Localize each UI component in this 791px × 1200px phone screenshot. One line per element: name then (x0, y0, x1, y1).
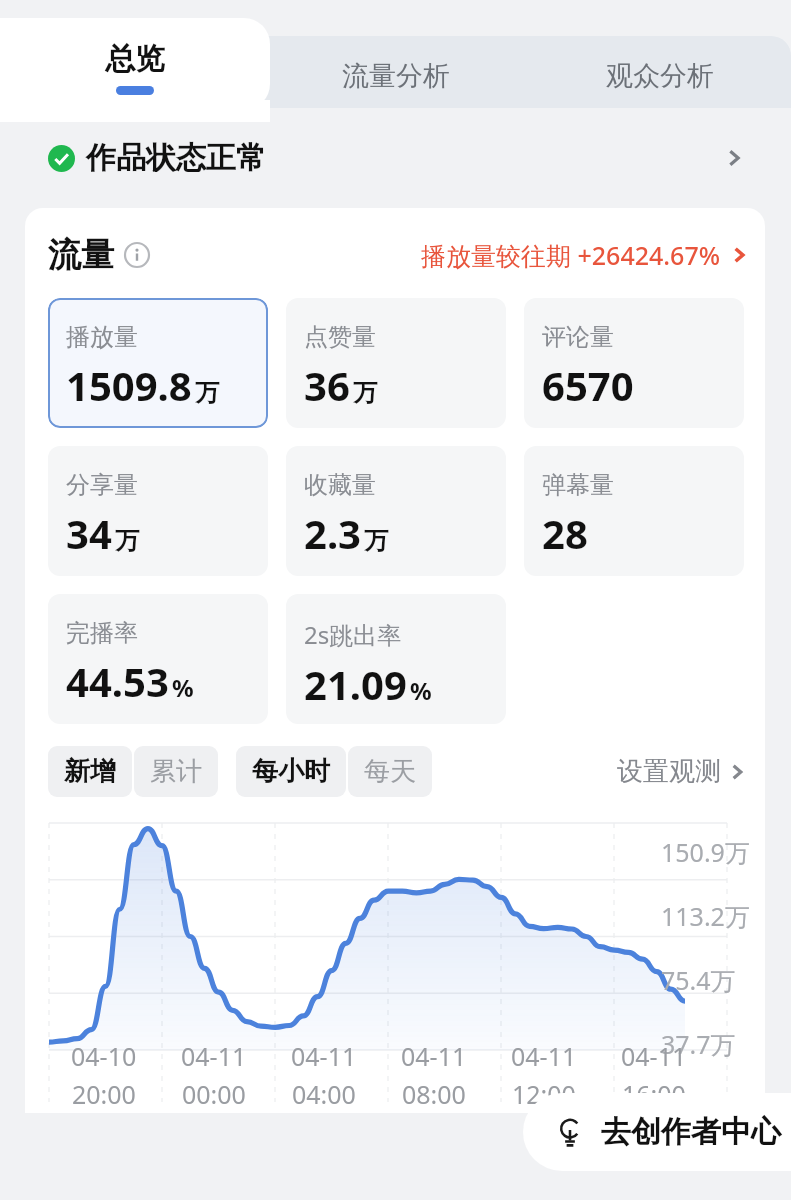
staticText: % (410, 674, 432, 707)
staticText: 万 (195, 378, 219, 408)
staticText: 28 (542, 506, 588, 560)
button[interactable]: 累计 (134, 746, 218, 797)
staticText: 36 (304, 358, 350, 412)
staticText: 00:00 (182, 1077, 246, 1111)
staticText: 08:00 (402, 1077, 466, 1111)
staticText: 6570 (542, 358, 634, 412)
staticText: 万 (115, 526, 139, 556)
button[interactable]: 新增 (48, 746, 132, 797)
staticText: 设置观测 (617, 755, 721, 788)
button[interactable]: 播放量 (48, 298, 268, 428)
staticText: 04-11 (291, 1039, 357, 1073)
staticText: 播放量较往期 +26424.67% (421, 238, 721, 272)
button[interactable]: 弹幕量 (524, 446, 744, 576)
staticText: 04-11 (181, 1039, 247, 1073)
button[interactable]: 说明 (124, 242, 150, 268)
staticText: 1509.8 (66, 358, 192, 412)
staticText: 75.4万 (661, 963, 736, 997)
staticText: 观众分析 (606, 59, 714, 93)
staticText: 20:00 (72, 1077, 136, 1111)
button[interactable]: 完播率 (48, 594, 268, 724)
staticText: 150.9万 (661, 835, 750, 869)
staticText: 总览 (105, 40, 165, 78)
button[interactable]: 作品状态正常 (0, 122, 791, 194)
staticText: 新增 (64, 755, 116, 788)
button[interactable]: 收藏量 (286, 446, 506, 576)
staticText: 37.7万 (661, 1027, 736, 1061)
staticText: 21.09 (304, 657, 407, 711)
staticText: 04-11 (511, 1039, 577, 1073)
staticText: 收藏量 (304, 470, 376, 500)
button[interactable]: 播放量较往期 +26424.67% (421, 238, 751, 272)
staticText: 完播率 (66, 618, 138, 648)
staticText: 点赞量 (304, 322, 376, 352)
staticText: 04-11 (621, 1039, 687, 1073)
staticText: 作品状态正常 (86, 139, 266, 177)
button[interactable]: 每小时 (236, 746, 346, 797)
staticText: 每小时 (252, 755, 330, 788)
staticText: 12:00 (512, 1077, 576, 1111)
staticText: 每天 (364, 755, 416, 788)
button[interactable]: 每天 (348, 746, 432, 797)
button[interactable]: 2s跳出率 (286, 594, 506, 724)
staticText: 万 (353, 378, 377, 408)
staticText: 04-11 (401, 1039, 467, 1073)
staticText: 评论量 (542, 322, 614, 352)
staticText: % (172, 671, 194, 704)
staticText: 16:00 (622, 1077, 686, 1111)
button[interactable]: 观众分析 (560, 52, 760, 100)
button[interactable]: 去创作者中心 (523, 1093, 791, 1171)
staticText: 2s跳出率 (304, 618, 402, 651)
staticText: 113.2万 (661, 899, 750, 933)
button[interactable]: 评论量 (524, 298, 744, 428)
staticText: 流量 (48, 234, 114, 276)
staticText: 去创作者中心 (601, 1113, 781, 1151)
staticText: 2.3 (304, 506, 361, 560)
staticText: 分享量 (66, 470, 138, 500)
staticText: 累计 (150, 755, 202, 788)
button[interactable]: 总览 (0, 18, 270, 110)
staticText: 44.53 (66, 654, 169, 708)
button[interactable]: 设置观测 (617, 755, 749, 788)
button[interactable]: 点赞量 (286, 298, 506, 428)
staticText: 04-10 (71, 1039, 137, 1073)
button[interactable]: 流量分析 (296, 52, 496, 100)
staticText: 播放量 (66, 322, 138, 352)
staticText: 04:00 (292, 1077, 356, 1111)
staticText: 弹幕量 (542, 470, 614, 500)
button[interactable]: 分享量 (48, 446, 268, 576)
staticText: 流量分析 (342, 59, 450, 93)
staticText: 万 (364, 526, 388, 556)
staticText: 34 (66, 506, 112, 560)
